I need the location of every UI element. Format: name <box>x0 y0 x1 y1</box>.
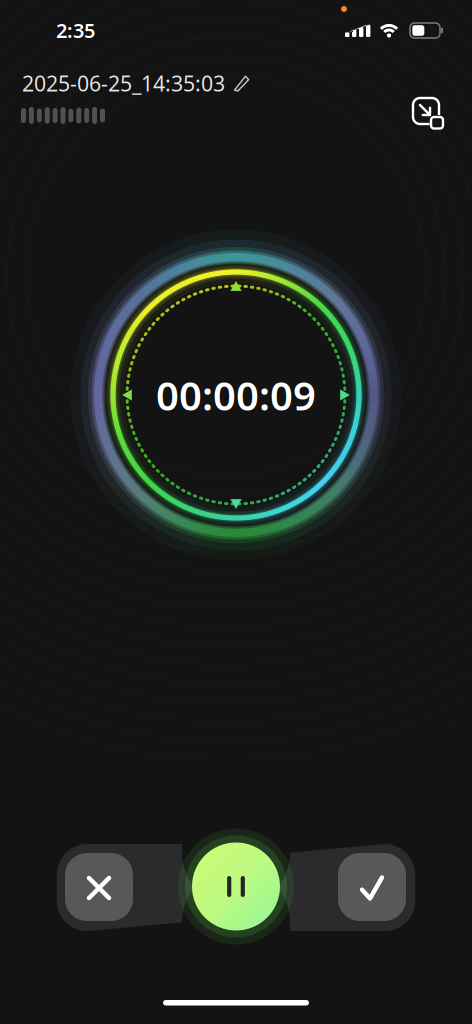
staticText: 2025-06-25_14:35:03 <box>22 69 225 97</box>
button[interactable]: Minimize <box>410 95 450 135</box>
staticText: 2:35 <box>56 17 95 44</box>
button[interactable]: Pause recording <box>178 828 294 944</box>
button[interactable]: Finish <box>338 853 406 921</box>
button[interactable]: Rename recording <box>231 73 252 94</box>
button[interactable]: Cancel <box>65 853 133 921</box>
staticText: 00:00:09 <box>156 368 316 421</box>
